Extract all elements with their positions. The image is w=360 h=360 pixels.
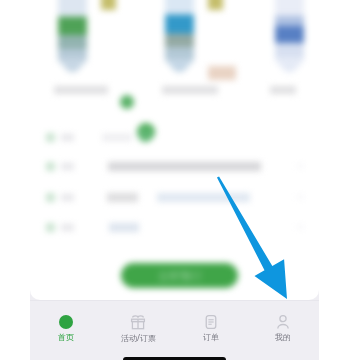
button[interactable] [30, 122, 319, 152]
staticText: 立即预订 [158, 269, 202, 283]
button[interactable]: 活动/订票 [102, 315, 174, 343]
button[interactable] [30, 212, 319, 242]
other: Home [59, 315, 73, 329]
button[interactable]: 我的 [247, 315, 319, 342]
button[interactable]: Home [30, 315, 102, 342]
button[interactable] [30, 151, 319, 181]
button[interactable] [30, 0, 136, 112]
button[interactable] [247, 0, 319, 112]
staticText: 首页 [58, 332, 74, 342]
staticText: 订单 [203, 332, 219, 342]
staticText: 活动/订票 [121, 332, 156, 343]
button[interactable] [137, 0, 243, 112]
button[interactable]: 立即预订 [121, 263, 238, 288]
button[interactable]: 订单 [175, 315, 247, 342]
button[interactable] [30, 182, 319, 212]
staticText: 我的 [275, 332, 291, 342]
